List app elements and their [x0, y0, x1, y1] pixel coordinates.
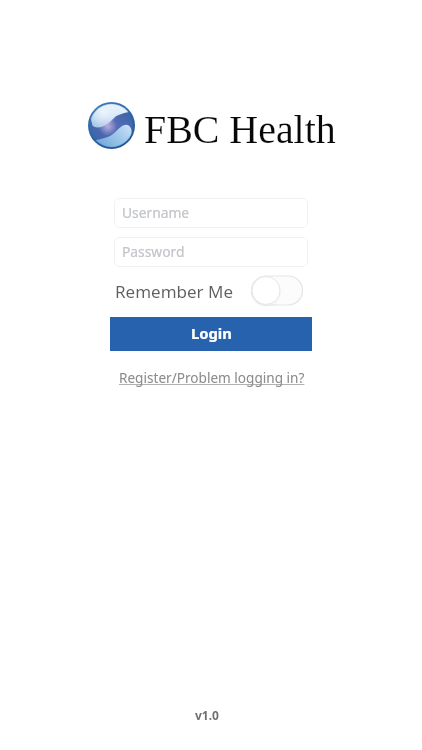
button[interactable]: Remember Me toggle	[251, 275, 303, 306]
staticText: Register/Problem logging in?	[119, 368, 305, 387]
button[interactable]: Password	[114, 237, 308, 267]
staticText: v1.0	[195, 707, 219, 723]
button[interactable]: Username	[114, 198, 308, 228]
staticText: Username	[122, 203, 190, 222]
button[interactable]: Register/Problem logging in?	[119, 368, 305, 387]
button[interactable]: Login	[110, 317, 312, 351]
staticText: Remember Me	[115, 280, 234, 303]
staticText: Login	[191, 323, 232, 343]
staticText: FBC Health	[144, 107, 336, 151]
staticText: Password	[122, 242, 185, 261]
